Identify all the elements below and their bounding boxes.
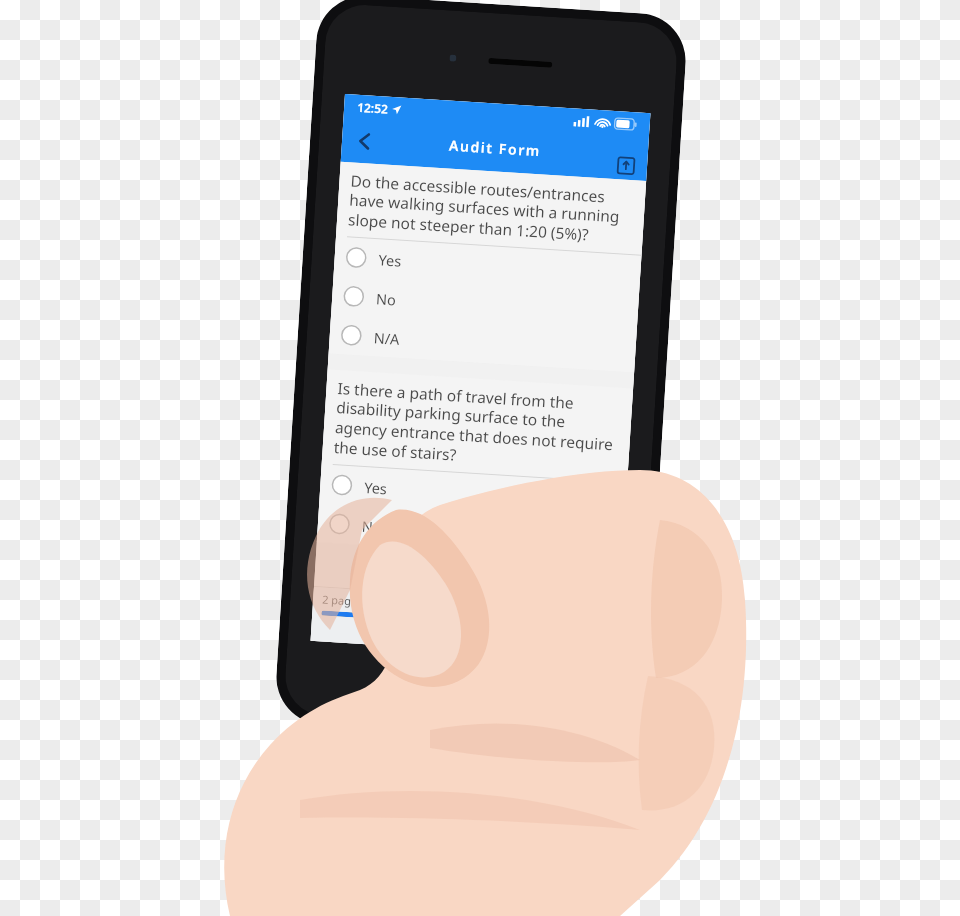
staticText: No <box>376 288 397 309</box>
staticText: Is there a path of travel from the disab… <box>333 377 622 476</box>
staticText: N/A <box>373 327 400 349</box>
staticText: Audit Form <box>448 136 542 160</box>
button[interactable]: Yes <box>334 237 641 295</box>
staticText: 12:52 <box>357 99 389 117</box>
button[interactable]: No <box>317 503 625 561</box>
staticText: Yes <box>364 477 388 498</box>
button[interactable]: Home <box>435 647 488 700</box>
staticText: 2 page of 4 <box>322 591 381 610</box>
button[interactable]: No <box>331 276 639 334</box>
staticText: No <box>361 516 382 537</box>
button[interactable]: Export <box>612 152 640 179</box>
staticText: Do the accessible routes/entrances have … <box>347 169 635 248</box>
button[interactable]: N/A <box>329 314 636 373</box>
staticText: Yes <box>378 249 402 271</box>
button[interactable]: Yes <box>319 464 627 522</box>
button[interactable]: Back <box>347 123 383 159</box>
